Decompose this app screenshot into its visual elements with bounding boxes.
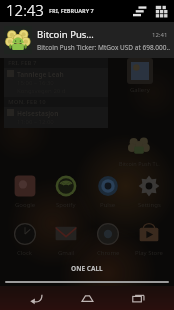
staticText: Gallery: [130, 86, 150, 94]
staticText: Gmail: [58, 249, 75, 257]
staticText: Google: [15, 201, 36, 209]
staticText: Chrome: [97, 249, 120, 257]
button[interactable]: Home: [72, 286, 102, 310]
staticText: 12:43: [6, 0, 44, 20]
button[interactable]: Recent apps: [123, 286, 153, 310]
button[interactable]: Chrome: [88, 221, 128, 257]
button[interactable]: Pulse: [88, 173, 128, 209]
staticText: ONE CALL: [71, 264, 103, 273]
staticText: Bitcoin Push Ti..: [119, 160, 160, 167]
button[interactable]: Clock: [5, 221, 45, 257]
staticText: Tannlege Leah: [17, 70, 64, 79]
staticText: FRI, FEBRUARY 7: [49, 7, 94, 14]
staticText: FRI, FEB 7: [8, 59, 37, 67]
button[interactable]: Settings: [129, 173, 169, 209]
button[interactable]: Back: [21, 286, 51, 310]
other: Signal: [133, 3, 149, 17]
button[interactable]: Bitcoin Push Ti..: [108, 134, 170, 167]
other: Battery: [155, 3, 168, 17]
button[interactable]: Spotify: [46, 173, 86, 209]
staticText: Spotify: [56, 201, 76, 209]
button[interactable]: Play Store: [129, 221, 169, 257]
button[interactable]: Google: [5, 173, 45, 209]
button[interactable]: [0, 278, 174, 286]
staticText: Settings: [138, 201, 161, 209]
staticText: Clock: [17, 249, 33, 257]
staticText: Play Store: [135, 249, 163, 257]
staticText: 12:41: [152, 31, 168, 39]
staticText: Bitcoin Push Ticker: MtGox USD at 698.00…: [37, 43, 170, 52]
staticText: Bitcoin Push Ticker: [37, 28, 94, 41]
button[interactable]: ONE CALL: [0, 258, 174, 278]
button[interactable]: Gmail: [46, 221, 86, 257]
staticText: Pulse: [100, 201, 116, 209]
button[interactable]: Gallery: [112, 58, 168, 94]
button[interactable]: FRI, FEB 7: [4, 58, 108, 130]
button[interactable]: Bitcoin Push Ticker: [0, 22, 174, 58]
staticText: Helsestasjon: [17, 109, 59, 118]
staticText: MON, FEB 10: [8, 98, 46, 106]
